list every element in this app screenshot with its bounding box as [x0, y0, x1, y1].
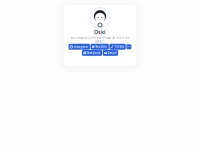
button[interactable]: TikTok — [109, 44, 126, 50]
button[interactable]: Instagram — [68, 44, 90, 50]
staticText: E-mail — [108, 51, 117, 55]
staticText: YouTube — [95, 45, 107, 48]
staticText: Facebook — [87, 51, 101, 55]
button[interactable]: More links — [126, 44, 131, 49]
staticText: your channels lets users email all clien… — [70, 36, 129, 40]
staticText: example — [95, 40, 105, 43]
button[interactable]: E-mail — [103, 50, 118, 56]
button[interactable]: Facebook — [82, 50, 102, 56]
staticText: TikTok — [114, 45, 124, 48]
button[interactable]: YouTube — [90, 44, 109, 50]
staticText: Oski — [94, 28, 106, 35]
staticText: Instagram — [73, 45, 88, 48]
